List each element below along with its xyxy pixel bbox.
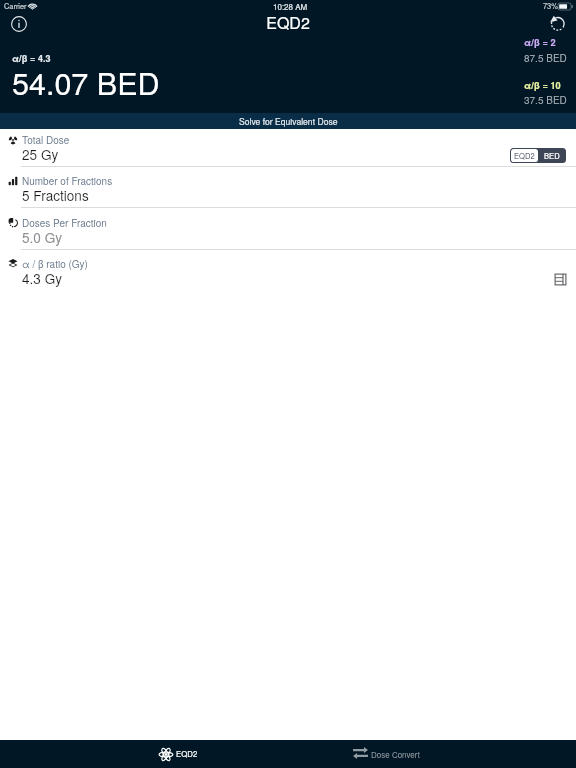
staticText: EQD2 <box>0 11 576 34</box>
button[interactable]: BED <box>538 149 565 162</box>
button[interactable]: α / β ratio (Gy) <box>0 250 576 291</box>
button[interactable]: Reset <box>548 13 568 33</box>
staticText: EQD2 <box>176 748 198 759</box>
staticText: Total Dose <box>22 133 70 147</box>
staticText: 37.5 BED <box>524 93 567 107</box>
button[interactable]: EQD2 <box>511 149 538 162</box>
staticText: Doses Per Fraction <box>22 216 107 230</box>
button[interactable]: Table view <box>553 272 568 287</box>
button[interactable]: EQD2 <box>150 740 208 768</box>
staticText: 54.07 BED <box>12 60 160 104</box>
staticText: 73% <box>543 1 558 12</box>
button[interactable]: Doses Per Fraction <box>0 208 576 250</box>
button[interactable]: Total Dose <box>0 130 576 167</box>
staticText: BED <box>544 150 560 161</box>
staticText: α/β = 4.3 <box>12 52 51 65</box>
button[interactable]: Dose Convert <box>345 740 425 768</box>
button[interactable]: Number of Fractions <box>0 167 576 208</box>
staticText: 5.0 Gy <box>22 227 63 246</box>
staticText: Number of Fractions <box>22 174 113 188</box>
staticText: Carrier <box>4 1 27 12</box>
staticText: Dose Convert <box>371 749 420 760</box>
staticText: 5 Fractions <box>22 185 89 204</box>
staticText: α/β = 2 <box>524 36 556 49</box>
staticText: 87.5 BED <box>524 51 567 65</box>
staticText: α/β = 10 <box>524 79 561 92</box>
staticText: α / β ratio (Gy) <box>22 257 88 271</box>
staticText: Solve for Equivalent Dose <box>239 115 338 127</box>
staticText: EQD2 <box>514 150 535 161</box>
staticText: 4.3 Gy <box>22 268 63 287</box>
staticText: 10:28 AM <box>273 1 308 12</box>
button[interactable]: Info <box>9 14 29 34</box>
staticText: 25 Gy <box>22 144 59 163</box>
